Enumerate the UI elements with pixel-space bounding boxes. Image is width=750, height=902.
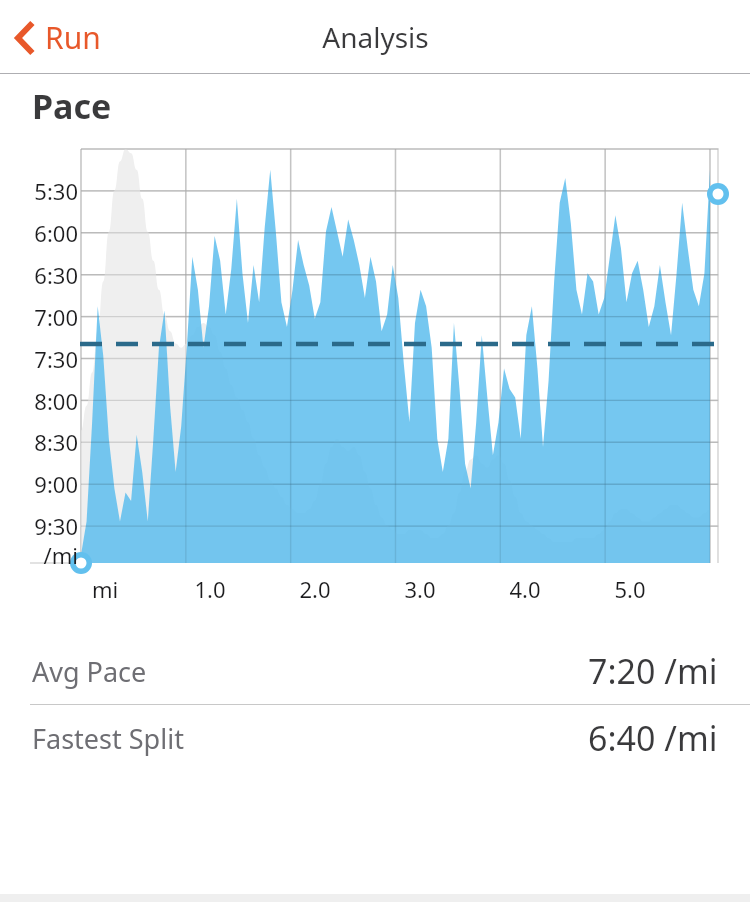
staticText: Pace — [32, 83, 112, 129]
staticText: mi — [75, 574, 135, 604]
staticText: 5.0 — [600, 574, 660, 604]
staticText: 9:00 — [32, 469, 78, 499]
staticText: 6:00 — [32, 218, 78, 248]
staticText: 7:00 — [32, 302, 78, 332]
staticText: 8:30 — [32, 427, 78, 457]
staticText: Analysis — [322, 18, 429, 56]
staticText: 8:00 — [32, 386, 78, 416]
staticText: 7:30 — [32, 344, 78, 374]
staticText: 6:40 /mi — [588, 715, 718, 761]
staticText: 6:30 — [32, 260, 78, 290]
staticText: 3.0 — [390, 574, 450, 604]
button[interactable]: Run — [10, 11, 107, 64]
button[interactable]: Avg Pace — [0, 638, 750, 704]
staticText: 9:30 — [32, 511, 78, 541]
staticText: 4.0 — [495, 574, 555, 604]
staticText: Avg Pace — [32, 653, 147, 690]
staticText: Fastest Split — [32, 720, 184, 757]
staticText: /mi — [32, 540, 78, 570]
staticText: 2.0 — [285, 574, 345, 604]
button[interactable]: Fastest Split — [0, 705, 750, 771]
staticText: 5:30 — [32, 176, 78, 206]
staticText: Run — [45, 17, 101, 58]
staticText: 7:20 /mi — [588, 648, 718, 694]
staticText: 1.0 — [180, 574, 240, 604]
